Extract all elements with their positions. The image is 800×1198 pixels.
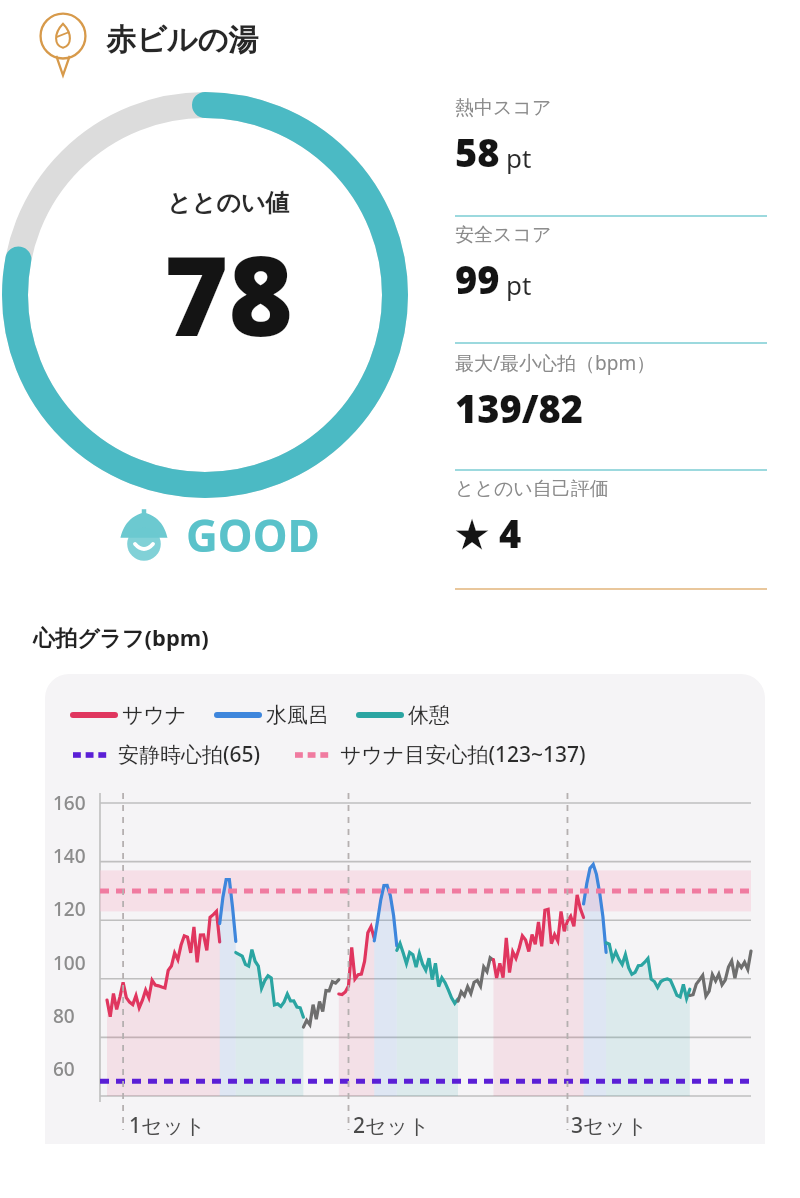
staticText: 赤ビルの湯 bbox=[106, 21, 259, 59]
staticText: 2セット bbox=[353, 1111, 430, 1140]
staticText: 心拍グラフ(bpm) bbox=[33, 622, 209, 652]
staticText: 160 bbox=[53, 790, 86, 816]
staticText: 99 bbox=[455, 253, 500, 305]
staticText: 120 bbox=[53, 896, 86, 922]
staticText: 3セット bbox=[571, 1111, 648, 1140]
staticText: 安静時心拍(65) bbox=[118, 740, 261, 769]
staticText: 安全スコア bbox=[455, 223, 552, 247]
staticText: 139/82 bbox=[455, 382, 584, 434]
staticText: サウナ bbox=[122, 702, 187, 728]
staticText: 140 bbox=[53, 843, 86, 869]
button[interactable]: 安全スコア bbox=[455, 217, 767, 344]
staticText: 休憩 bbox=[408, 702, 450, 728]
staticText: pt bbox=[506, 267, 532, 302]
staticText: 熱中スコア bbox=[455, 96, 552, 120]
staticText: ととのい値 bbox=[167, 188, 290, 218]
staticText: ★ 4 bbox=[455, 507, 522, 559]
other: Sauna location bbox=[30, 7, 96, 73]
staticText: 1セット bbox=[129, 1111, 206, 1140]
staticText: 60 bbox=[53, 1056, 75, 1082]
staticText: 100 bbox=[53, 950, 86, 976]
button[interactable]: 熱中スコア bbox=[455, 90, 767, 217]
button[interactable]: ととのい自己評価 bbox=[455, 471, 767, 590]
staticText: 58 bbox=[455, 126, 500, 178]
button[interactable]: Sauna location bbox=[0, 0, 800, 80]
staticText: 最大/最小心拍（bpm） bbox=[455, 350, 656, 376]
staticText: ととのい自己評価 bbox=[455, 477, 609, 501]
staticText: pt bbox=[506, 140, 532, 175]
button[interactable]: 最大/最小心拍（bpm） bbox=[455, 344, 767, 471]
button[interactable]: サウナ bbox=[45, 674, 765, 1144]
staticText: 78 bbox=[164, 218, 293, 368]
staticText: GOOD bbox=[186, 505, 320, 565]
staticText: サウナ目安心拍(123~137) bbox=[340, 740, 586, 769]
staticText: 80 bbox=[53, 1003, 75, 1029]
staticText: 水風呂 bbox=[266, 702, 329, 728]
